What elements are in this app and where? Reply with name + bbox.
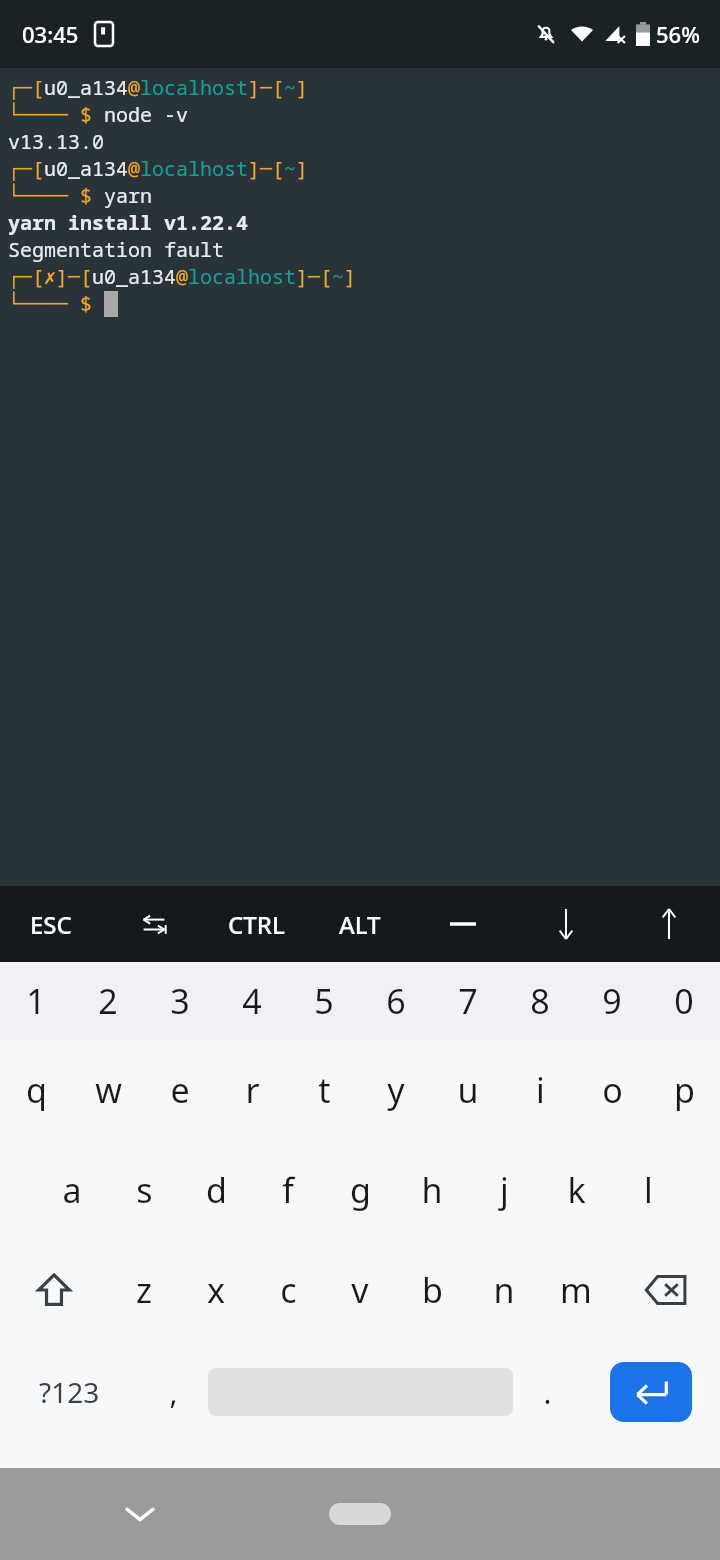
- staticText: ,: [169, 1372, 178, 1413]
- staticText: ┌─[✗]─[u0_a134@localhost]─[~]: [8, 263, 357, 290]
- button[interactable]: j: [468, 1140, 540, 1240]
- staticText: c: [280, 1267, 297, 1313]
- button[interactable]: a: [36, 1140, 108, 1240]
- button[interactable]: 1: [0, 962, 72, 1040]
- staticText: y: [387, 1067, 405, 1113]
- button[interactable]: Arrow down: [514, 886, 617, 962]
- staticText: 03:45: [22, 19, 79, 49]
- button[interactable]: p: [648, 1040, 720, 1140]
- staticText: g: [350, 1167, 371, 1213]
- staticText: ┌─[u0_a134@localhost]─[~]: [8, 74, 308, 101]
- staticText: 2: [98, 978, 118, 1024]
- button[interactable]: m: [540, 1240, 612, 1340]
- button[interactable]: Enter: [610, 1362, 692, 1422]
- staticText: ?123: [39, 1373, 100, 1411]
- button[interactable]: Minus: [411, 886, 514, 962]
- staticText: .: [543, 1372, 552, 1413]
- button[interactable]: 8: [504, 962, 576, 1040]
- button[interactable]: 7: [432, 962, 504, 1040]
- button[interactable]: 3: [144, 962, 216, 1040]
- staticText: 7: [458, 978, 478, 1024]
- staticText: f: [282, 1167, 294, 1213]
- staticText: 6: [386, 978, 406, 1024]
- staticText: r: [245, 1067, 260, 1113]
- button[interactable]: x: [180, 1240, 252, 1340]
- button[interactable]: Shift: [0, 1240, 108, 1340]
- button[interactable]: y: [360, 1040, 432, 1140]
- button[interactable]: Tab: [102, 886, 205, 962]
- staticText: h: [421, 1167, 443, 1213]
- button[interactable]: c: [252, 1240, 324, 1340]
- staticText: x: [207, 1267, 225, 1313]
- button[interactable]: q: [0, 1040, 72, 1140]
- button[interactable]: Alt: [308, 886, 411, 962]
- button[interactable]: z: [108, 1240, 180, 1340]
- staticText: ┌─[u0_a134@localhost]─[~]: [8, 155, 308, 182]
- staticText: q: [26, 1067, 47, 1113]
- staticText: a: [62, 1167, 82, 1213]
- staticText: v: [351, 1267, 369, 1313]
- button[interactable]: o: [576, 1040, 648, 1140]
- staticText: s: [136, 1167, 153, 1213]
- button[interactable]: g: [324, 1140, 396, 1240]
- staticText: ALT: [339, 908, 381, 941]
- button[interactable]: h: [396, 1140, 468, 1240]
- staticText: └──── $: [8, 290, 104, 317]
- button[interactable]: Arrow up: [617, 886, 720, 962]
- button[interactable]: ?123: [0, 1340, 139, 1444]
- button[interactable]: 0: [648, 962, 720, 1040]
- staticText: CTRL: [228, 908, 285, 941]
- button[interactable]: d: [180, 1140, 252, 1240]
- button[interactable]: .: [513, 1340, 582, 1444]
- button[interactable]: 6: [360, 962, 432, 1040]
- button[interactable]: v: [324, 1240, 396, 1340]
- staticText: d: [206, 1167, 227, 1213]
- staticText: z: [136, 1267, 152, 1313]
- button[interactable]: s: [108, 1140, 180, 1240]
- staticText: 5: [314, 978, 334, 1024]
- staticText: 3: [170, 978, 190, 1024]
- button[interactable]: k: [540, 1140, 612, 1240]
- button[interactable]: r: [216, 1040, 288, 1140]
- staticText: ESC: [30, 908, 72, 941]
- staticText: j: [500, 1167, 509, 1213]
- button[interactable]: ,: [139, 1340, 208, 1444]
- button[interactable]: Escape: [0, 886, 102, 962]
- staticText: n: [493, 1267, 515, 1313]
- staticText: i: [536, 1067, 545, 1113]
- button[interactable]: 4: [216, 962, 288, 1040]
- staticText: e: [170, 1067, 190, 1113]
- staticText: └──── $ yarn: [8, 182, 152, 209]
- staticText: 9: [602, 978, 622, 1024]
- button[interactable]: i: [504, 1040, 576, 1140]
- button[interactable]: Home: [329, 1503, 391, 1525]
- button[interactable]: n: [468, 1240, 540, 1340]
- button[interactable]: u: [432, 1040, 504, 1140]
- button[interactable]: Hide keyboard: [110, 1484, 170, 1544]
- staticText: 56%: [656, 19, 700, 49]
- button[interactable]: Backspace: [612, 1240, 720, 1340]
- button[interactable]: e: [144, 1040, 216, 1140]
- staticText: 4: [242, 978, 262, 1024]
- staticText: p: [674, 1067, 695, 1113]
- staticText: k: [567, 1167, 586, 1213]
- staticText: 1: [26, 978, 46, 1024]
- staticText: m: [560, 1267, 592, 1313]
- staticText: u: [457, 1067, 479, 1113]
- staticText: w: [95, 1067, 122, 1113]
- button[interactable]: 2: [72, 962, 144, 1040]
- button[interactable]: l: [612, 1140, 684, 1240]
- button[interactable]: 9: [576, 962, 648, 1040]
- button[interactable]: 5: [288, 962, 360, 1040]
- staticText: └──── $ node -v: [8, 101, 188, 128]
- button[interactable]: b: [396, 1240, 468, 1340]
- staticText: t: [318, 1067, 331, 1113]
- button[interactable]: f: [252, 1140, 324, 1240]
- staticText: v13.13.0: [8, 128, 104, 155]
- button[interactable]: Control: [205, 886, 308, 962]
- button[interactable]: w: [72, 1040, 144, 1140]
- button[interactable]: t: [288, 1040, 360, 1140]
- staticText: b: [422, 1267, 443, 1313]
- staticText: 0: [674, 978, 694, 1024]
